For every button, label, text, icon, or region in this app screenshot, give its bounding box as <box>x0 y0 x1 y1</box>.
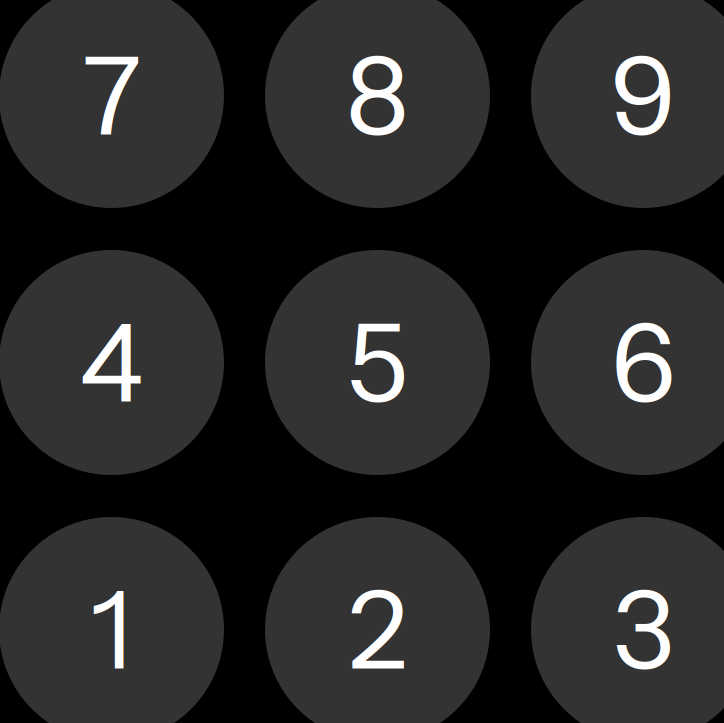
staticText: 5 <box>346 297 408 428</box>
button[interactable]: 5 <box>265 250 490 475</box>
staticText: 4 <box>79 297 144 428</box>
staticText: 1 <box>90 564 132 695</box>
button[interactable]: 3 <box>531 517 724 723</box>
button[interactable]: 2 <box>265 517 490 723</box>
staticText: 2 <box>348 564 407 695</box>
button[interactable]: 7 <box>0 0 224 208</box>
button[interactable]: 8 <box>265 0 490 208</box>
staticText: 8 <box>346 30 409 161</box>
button[interactable]: 9 <box>531 0 724 208</box>
button[interactable]: 6 <box>531 250 724 475</box>
staticText: 7 <box>83 30 140 161</box>
staticText: 9 <box>610 30 676 161</box>
staticText: 6 <box>611 297 676 428</box>
button[interactable]: 1 <box>0 517 224 723</box>
button[interactable]: 4 <box>0 250 224 475</box>
staticText: 3 <box>612 564 674 695</box>
